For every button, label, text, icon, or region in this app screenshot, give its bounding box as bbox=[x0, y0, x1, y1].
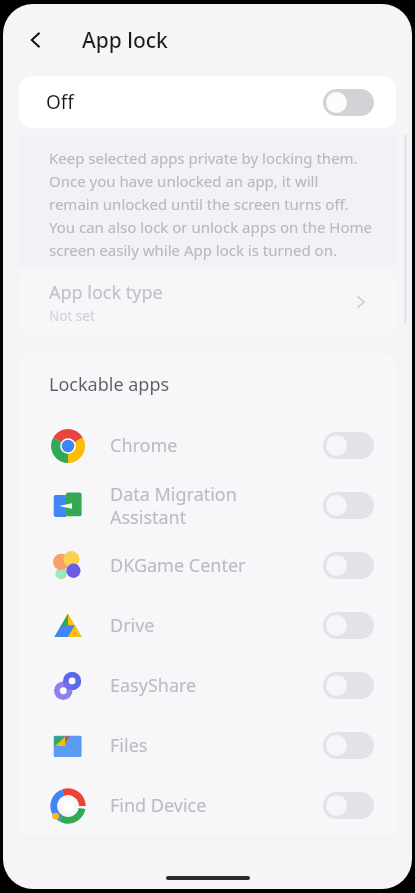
button[interactable] bbox=[323, 552, 374, 579]
staticText: Chrome bbox=[110, 433, 323, 458]
staticText: Files bbox=[110, 733, 323, 758]
staticText: EasyShare bbox=[110, 673, 323, 698]
staticText: Drive bbox=[110, 613, 323, 638]
staticText: Off bbox=[46, 89, 74, 115]
button[interactable]: Off bbox=[19, 76, 396, 128]
button[interactable] bbox=[323, 492, 374, 519]
button[interactable] bbox=[323, 732, 374, 759]
button[interactable]: App lock type bbox=[19, 268, 396, 336]
button[interactable]: Drive bbox=[19, 595, 396, 655]
button[interactable] bbox=[323, 792, 374, 819]
staticText: Not set bbox=[49, 307, 95, 325]
button[interactable]: DKGame Center bbox=[19, 535, 396, 595]
button[interactable]: Data Migration Assistant bbox=[19, 475, 396, 535]
button[interactable]: Files bbox=[19, 715, 396, 775]
staticText: Find Device bbox=[110, 793, 323, 818]
button[interactable]: EasyShare bbox=[19, 655, 396, 715]
button[interactable]: Chrome bbox=[19, 415, 396, 475]
staticText: Lockable apps bbox=[49, 372, 170, 397]
staticText: Data Migration Assistant bbox=[110, 482, 323, 529]
button[interactable]: Back bbox=[14, 18, 58, 62]
staticText: App lock bbox=[82, 26, 168, 55]
button[interactable] bbox=[323, 89, 374, 116]
staticText: DKGame Center bbox=[110, 553, 323, 578]
staticText: App lock type bbox=[49, 280, 163, 305]
button[interactable]: Find Device bbox=[19, 775, 396, 835]
button[interactable] bbox=[323, 612, 374, 639]
button[interactable] bbox=[323, 432, 374, 459]
staticText: Keep selected apps private by locking th… bbox=[49, 148, 372, 260]
button[interactable] bbox=[323, 672, 374, 699]
